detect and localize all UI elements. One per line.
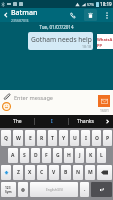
staticText: N	[76, 169, 81, 176]
button[interactable]: Delete	[81, 8, 100, 22]
button[interactable]: M	[85, 165, 95, 180]
button[interactable]: O	[92, 130, 101, 146]
button[interactable]: I	[81, 130, 90, 146]
button[interactable]: Z	[13, 165, 23, 180]
staticText: Z	[17, 169, 20, 176]
staticText: R	[40, 135, 44, 142]
staticText: M	[88, 169, 93, 176]
staticText: X	[28, 169, 32, 176]
staticText: I	[85, 135, 87, 142]
staticText: L	[100, 152, 103, 159]
staticText: J	[79, 152, 81, 159]
staticText: V	[52, 169, 56, 176]
button[interactable]: Send	[98, 95, 110, 107]
button[interactable]: Emoji	[2, 102, 11, 111]
button[interactable]: K	[86, 148, 95, 163]
button[interactable]: V	[49, 165, 59, 180]
button[interactable]: B	[61, 165, 71, 180]
button[interactable]: C	[37, 165, 47, 180]
staticText: F	[45, 152, 48, 159]
button[interactable]: WhatsApp	[97, 34, 113, 49]
staticText: D	[34, 152, 38, 159]
button[interactable]: U	[70, 130, 79, 146]
staticText: U	[73, 135, 77, 142]
button[interactable]: Q	[1, 130, 11, 146]
button[interactable]: S	[20, 148, 29, 163]
button[interactable]: H	[64, 148, 73, 163]
button[interactable]: D	[31, 148, 40, 163]
staticText: T	[51, 135, 54, 142]
button[interactable]: Y	[59, 130, 68, 146]
button[interactable]: Space	[30, 182, 78, 197]
button[interactable]: R	[37, 130, 46, 146]
button[interactable]: Enter	[91, 182, 112, 197]
button[interactable]: T	[48, 130, 57, 146]
button[interactable]: G	[53, 148, 62, 163]
button[interactable]: J	[75, 148, 84, 163]
staticText: A	[11, 152, 15, 159]
staticText: P	[106, 135, 110, 142]
staticText: .	[84, 186, 86, 193]
staticText: Gotham needs help	[31, 35, 92, 44]
staticText: B	[64, 169, 68, 176]
staticText: English(US)	[46, 188, 63, 192]
staticText: C	[40, 169, 44, 176]
staticText: 18:19	[100, 1, 112, 7]
button[interactable]: E	[25, 130, 35, 146]
button[interactable]: Back	[0, 8, 11, 22]
button[interactable]: Gotham needs help	[28, 32, 93, 50]
button[interactable]: More options	[100, 8, 113, 22]
staticText: G	[56, 152, 60, 159]
staticText: W	[16, 135, 21, 142]
staticText: O	[95, 135, 99, 142]
staticText: S	[23, 152, 26, 159]
staticText: The	[13, 118, 22, 125]
staticText: I	[51, 118, 53, 125]
staticText: H	[67, 152, 71, 159]
staticText: E	[29, 135, 32, 142]
button[interactable]: Settings	[18, 182, 28, 197]
button[interactable]: Call	[63, 8, 81, 22]
button[interactable]: L	[97, 148, 106, 163]
button[interactable]: 123 Sym	[1, 182, 16, 197]
button[interactable]: More suggestions	[102, 115, 113, 128]
staticText: Thanks	[77, 118, 94, 125]
staticText: Enter message	[14, 94, 53, 102]
button[interactable]: I	[35, 115, 68, 128]
button[interactable]: Thanks	[69, 115, 102, 128]
button[interactable]: F	[42, 148, 51, 163]
button[interactable]: .	[80, 182, 89, 197]
button[interactable]: Shift	[1, 165, 11, 180]
staticText: WhatsApp	[97, 37, 113, 47]
staticText: K	[89, 152, 93, 159]
button[interactable]: X	[25, 165, 35, 180]
staticText: 18:18	[82, 44, 91, 49]
button[interactable]: N	[73, 165, 83, 180]
staticText: Batman	[11, 8, 38, 18]
button[interactable]: A	[8, 148, 18, 163]
button[interactable]: Attach	[2, 92, 12, 102]
staticText: 57%	[87, 2, 95, 7]
staticText: 160/1	[100, 108, 110, 113]
button[interactable]: Backspace	[97, 165, 112, 180]
button[interactable]: P	[103, 130, 112, 146]
staticText: Q	[4, 135, 8, 142]
staticText: Tue, 01/07/2014	[0, 24, 113, 30]
staticText: Y	[62, 135, 66, 142]
button[interactable]: W	[13, 130, 23, 146]
button[interactable]: The	[0, 115, 34, 128]
staticText: 123 Sym	[5, 186, 12, 194]
staticText: 2356870?4	[11, 18, 29, 22]
